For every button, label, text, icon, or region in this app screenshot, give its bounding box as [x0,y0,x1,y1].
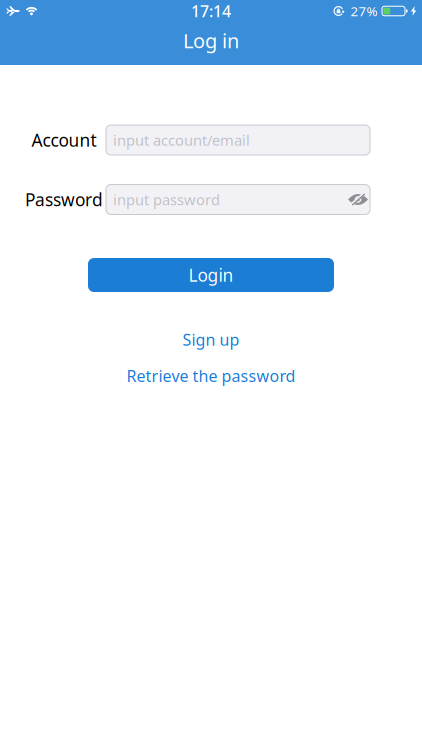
staticText: Account [31,128,96,151]
staticText: Sign up [182,329,239,350]
staticText: Retrieve the password [126,365,295,386]
staticText: input account/email [113,130,250,150]
staticText: Log in [183,27,239,54]
staticText: Login [188,263,233,286]
staticText: 27% [350,2,377,20]
button[interactable]: Sign up [182,329,239,350]
button[interactable]: Retrieve the password [126,365,295,386]
button[interactable]: Show password [342,185,368,214]
staticText: Password [25,188,103,211]
staticText: 17:14 [191,0,231,22]
staticText: input password [113,190,220,209]
button[interactable]: Account input field [106,125,370,155]
button[interactable]: Login [88,258,334,292]
button[interactable]: Password input field [106,184,370,214]
